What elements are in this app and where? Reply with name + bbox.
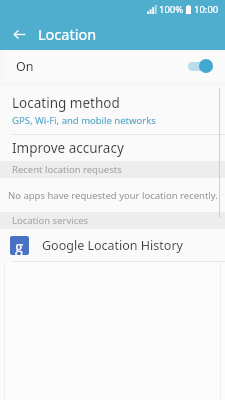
staticText: Google Location History (42, 237, 183, 254)
staticText: g (15, 236, 24, 255)
staticText: 10:00 (194, 3, 219, 16)
button[interactable]: On (4, 50, 225, 82)
button[interactable]: Back (6, 21, 32, 47)
button[interactable]: g (0, 229, 225, 261)
staticText: Location (38, 24, 97, 44)
staticText: Recent location requests (12, 163, 122, 176)
staticText: 100% (159, 3, 184, 16)
staticText: On (16, 58, 34, 75)
staticText: Location services (12, 214, 89, 227)
button[interactable]: Location on (187, 59, 213, 73)
staticText: No apps have requested your location rec… (8, 189, 218, 202)
staticText: Improve accuracy (12, 139, 124, 157)
button[interactable]: Locating method (0, 86, 225, 134)
staticText: Locating method (12, 94, 120, 112)
staticText: GPS, Wi-Fi, and mobile networks (12, 114, 156, 127)
button[interactable]: Improve accuracy (0, 135, 225, 161)
